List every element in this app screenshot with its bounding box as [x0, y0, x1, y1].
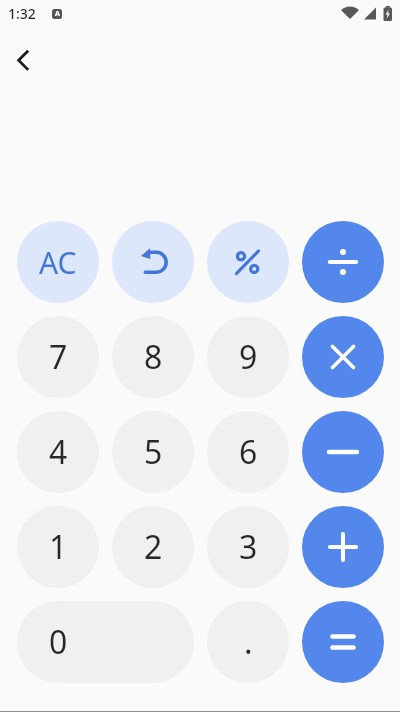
button[interactable]: 5: [112, 411, 194, 493]
button[interactable]: 8: [112, 316, 194, 398]
staticText: AC: [39, 242, 77, 283]
button[interactable]: [302, 601, 384, 683]
button[interactable]: 6: [207, 411, 289, 493]
button[interactable]: 3: [207, 506, 289, 588]
button[interactable]: [2, 38, 46, 82]
button[interactable]: [112, 221, 194, 303]
staticText: 4: [49, 430, 68, 474]
staticText: .: [244, 620, 253, 664]
button[interactable]: 0: [17, 601, 194, 683]
staticText: 2: [144, 525, 163, 569]
staticText: 9: [239, 335, 258, 379]
button[interactable]: [302, 411, 384, 493]
button[interactable]: 7: [17, 316, 99, 398]
staticText: 1:32: [8, 4, 36, 23]
staticText: 6: [239, 430, 258, 474]
button[interactable]: [302, 506, 384, 588]
button[interactable]: [302, 316, 384, 398]
button[interactable]: 4: [17, 411, 99, 493]
staticText: 7: [49, 335, 68, 379]
staticText: 3: [239, 525, 258, 569]
staticText: 5: [144, 430, 163, 474]
button[interactable]: 2: [112, 506, 194, 588]
staticText: A: [55, 9, 60, 19]
button[interactable]: 1: [17, 506, 99, 588]
staticText: 8: [144, 335, 163, 379]
button[interactable]: [207, 221, 289, 303]
staticText: 0: [49, 620, 68, 664]
button[interactable]: .: [207, 601, 289, 683]
staticText: 1: [49, 525, 68, 569]
button[interactable]: 9: [207, 316, 289, 398]
button[interactable]: AC: [17, 221, 99, 303]
button[interactable]: [302, 221, 384, 303]
